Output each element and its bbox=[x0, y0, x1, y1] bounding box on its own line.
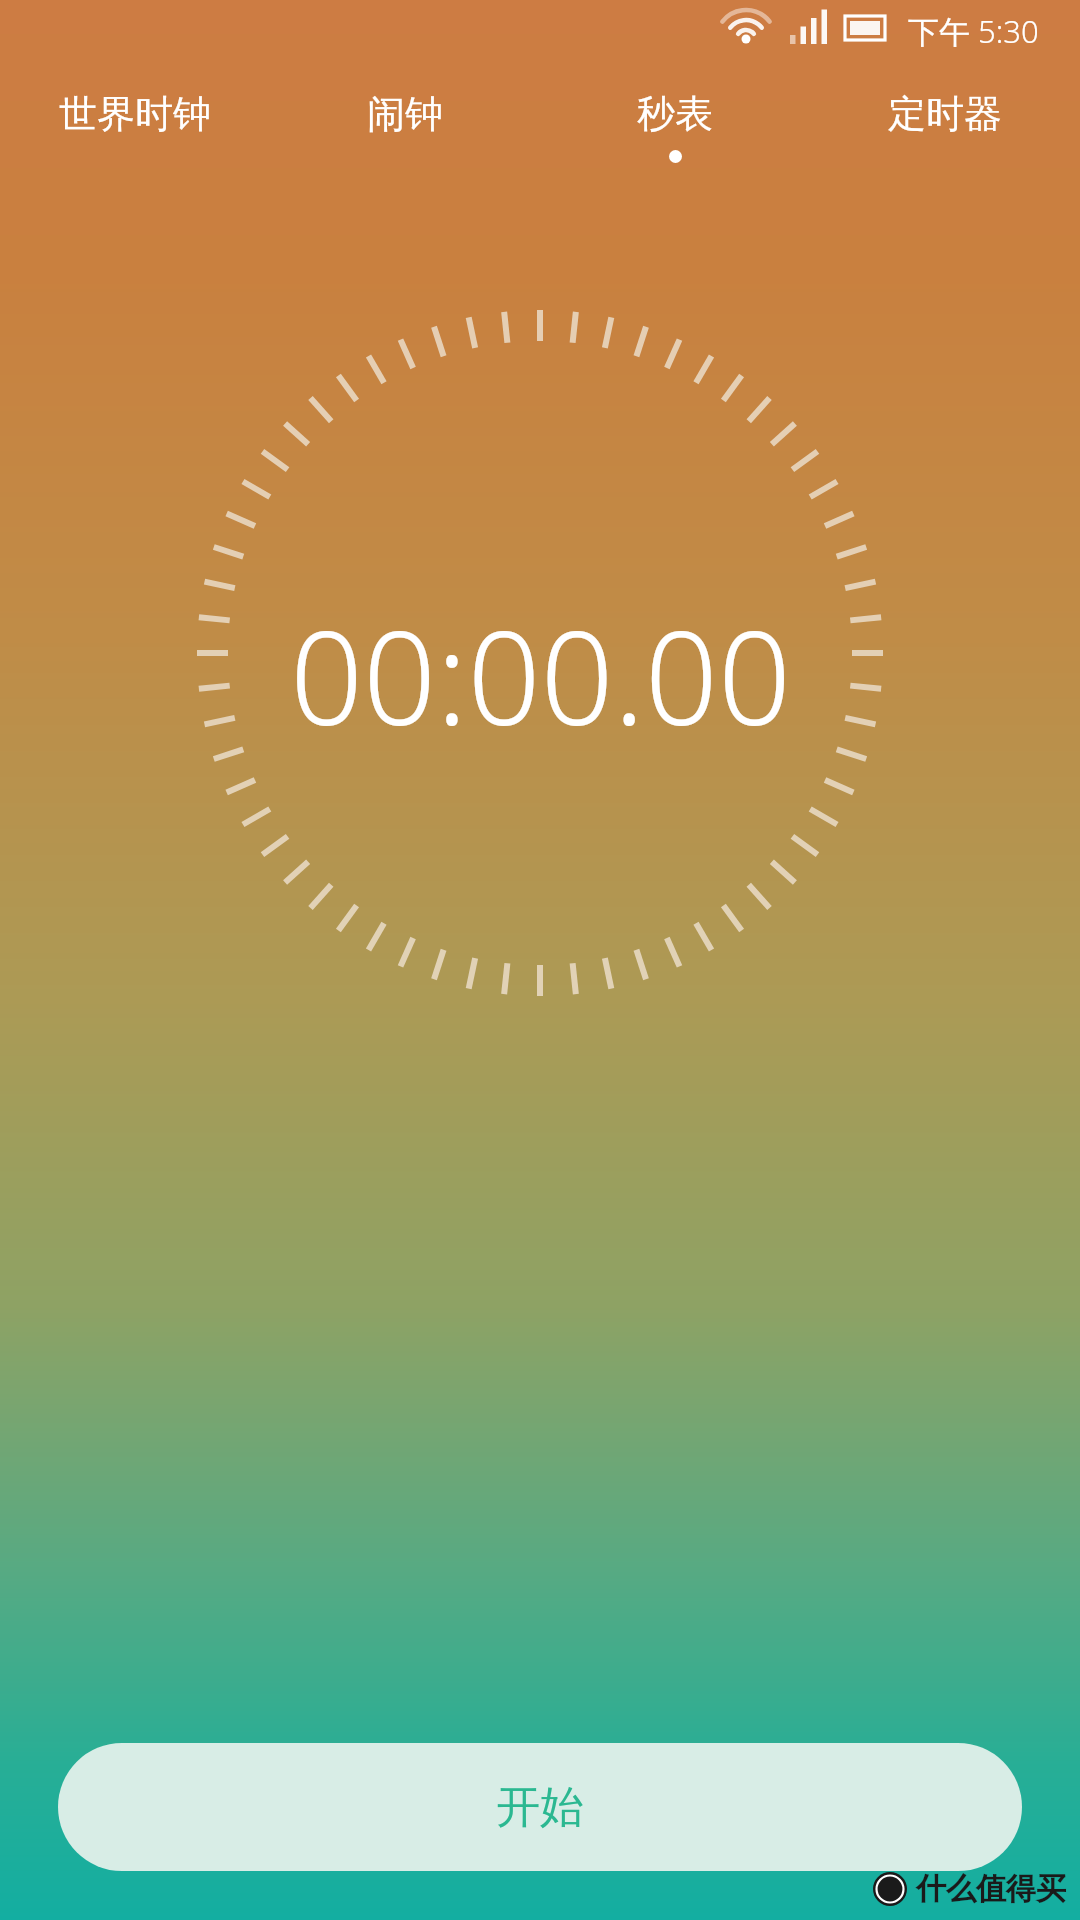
staticText: 定时器 bbox=[888, 90, 1002, 138]
other: Status icons bbox=[708, 0, 898, 62]
staticText: 闹钟 bbox=[367, 90, 443, 138]
staticText: 什么值得买 bbox=[916, 1870, 1066, 1908]
staticText: 世界时钟 bbox=[59, 90, 211, 138]
button[interactable]: 闹钟 bbox=[270, 90, 540, 200]
staticText: 秒表 bbox=[637, 90, 713, 138]
button[interactable]: 秒表 bbox=[540, 90, 810, 200]
staticText: 下午 5:30 bbox=[908, 10, 1039, 52]
button[interactable]: 世界时钟 bbox=[0, 90, 270, 200]
staticText: 00:00.00 bbox=[290, 588, 791, 762]
button[interactable]: 定时器 bbox=[810, 90, 1080, 200]
staticText: 开始 bbox=[496, 1780, 584, 1835]
button[interactable]: 开始 bbox=[58, 1743, 1022, 1871]
